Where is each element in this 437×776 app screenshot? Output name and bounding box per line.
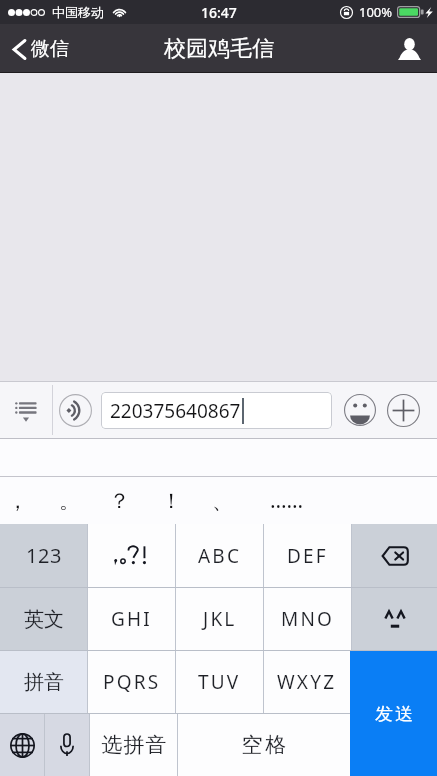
button[interactable]: Contact profile <box>389 29 429 69</box>
button[interactable]: More actions <box>381 388 425 432</box>
button[interactable]: 220375640867 <box>101 392 332 429</box>
staticText: ？ <box>109 488 130 514</box>
button[interactable]: 微信 <box>0 29 79 69</box>
button[interactable]: …… <box>263 477 311 524</box>
staticText: GHI <box>111 606 152 632</box>
staticText: 16:47 <box>201 3 237 22</box>
button[interactable]: TUV <box>176 651 263 713</box>
staticText: 、 <box>212 488 233 514</box>
staticText: TUV <box>198 669 241 695</box>
button[interactable]: ABC <box>176 524 263 587</box>
button[interactable]: Switch language <box>0 714 44 776</box>
staticText: ABC <box>198 543 242 569</box>
staticText: 。 <box>59 488 80 514</box>
button[interactable]: WXYZ <box>264 651 350 713</box>
button[interactable]: ， <box>0 477 41 524</box>
staticText: …… <box>270 486 304 515</box>
button[interactable]: Voice input <box>53 381 98 439</box>
button[interactable]: GHI <box>88 588 175 650</box>
button[interactable]: 选拼音 <box>90 714 177 776</box>
button[interactable]: Emoji <box>338 388 382 432</box>
staticText: 发送 <box>374 703 414 726</box>
staticText: 微信 <box>31 37 69 61</box>
staticText: 选拼音 <box>101 732 167 758</box>
button[interactable]: DEF <box>264 524 351 587</box>
button[interactable]: 拼音 <box>0 651 87 713</box>
button[interactable]: MNO <box>264 588 351 650</box>
button[interactable]: Emoticons <box>352 588 437 650</box>
staticText: 空格 <box>240 732 288 758</box>
staticText: 100% <box>359 3 393 21</box>
button[interactable]: Voice dictation <box>45 714 89 776</box>
staticText: 123 <box>26 542 62 569</box>
button[interactable]: ！ <box>147 477 195 524</box>
staticText: 中国移动 <box>52 4 104 20</box>
staticText: 英文 <box>24 607 64 632</box>
staticText: DEF <box>287 543 328 569</box>
staticText: PQRS <box>103 669 161 695</box>
staticText: 校园鸡毛信 <box>164 35 274 63</box>
button[interactable]: 发送 <box>350 651 437 776</box>
button[interactable]: Delete <box>352 524 437 587</box>
staticText: WXYZ <box>277 669 337 695</box>
staticText: ！ <box>161 488 182 514</box>
staticText: MNO <box>281 606 335 632</box>
button[interactable]: 。 <box>45 477 93 524</box>
staticText: 拼音 <box>24 670 64 695</box>
button[interactable]: 英文 <box>0 588 87 650</box>
button[interactable]: 123 <box>0 524 87 587</box>
button[interactable]: Keyboard options <box>0 381 52 439</box>
button[interactable]: 空格 <box>178 714 350 776</box>
staticText: 220375640867 <box>110 398 241 424</box>
staticText: JKL <box>203 606 237 632</box>
button[interactable]: ？ <box>95 477 143 524</box>
button[interactable]: 、 <box>198 477 246 524</box>
staticText: ， <box>7 488 28 514</box>
button[interactable]: JKL <box>176 588 263 650</box>
button[interactable] <box>88 524 175 587</box>
button[interactable]: PQRS <box>88 651 175 713</box>
